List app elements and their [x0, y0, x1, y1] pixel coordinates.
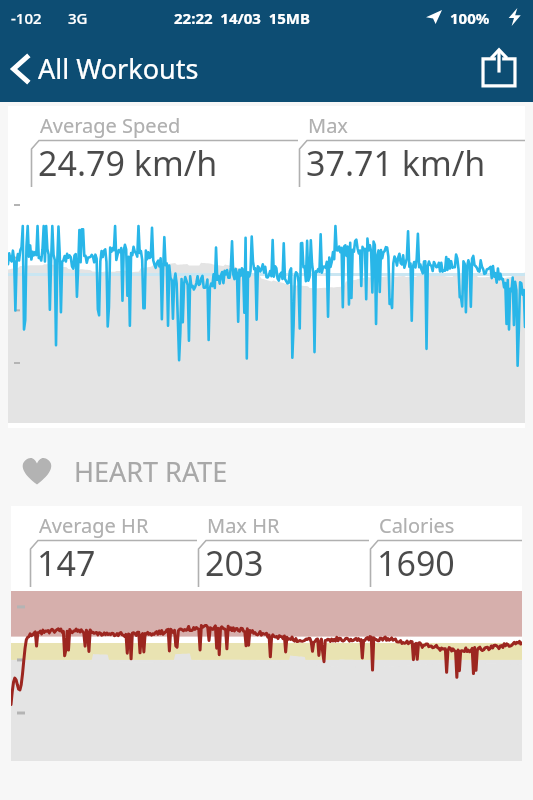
staticText: All Workouts [38, 50, 199, 87]
staticText: Calories [379, 512, 455, 539]
button[interactable]: Average HR [11, 506, 522, 761]
staticText: 3G [68, 8, 88, 28]
staticText: 22:22 14/03 15MB [174, 8, 310, 28]
staticText: 24.79 km/h [38, 140, 218, 186]
staticText: -102 [11, 8, 42, 28]
staticText: 37.71 km/h [306, 140, 486, 186]
button[interactable]: Share [473, 42, 525, 94]
staticText: 1690 [377, 540, 455, 586]
staticText: Average Speed [40, 112, 181, 139]
button[interactable]: All Workouts [0, 44, 213, 93]
staticText: Max HR [207, 512, 280, 539]
staticText: Average HR [39, 512, 149, 539]
staticText: 147 [37, 540, 96, 586]
staticText: Max [308, 112, 348, 139]
button[interactable]: Average Speed [8, 106, 525, 428]
staticText: 203 [205, 540, 264, 586]
staticText: 100% [450, 8, 490, 28]
staticText: HEART RATE [74, 453, 228, 490]
